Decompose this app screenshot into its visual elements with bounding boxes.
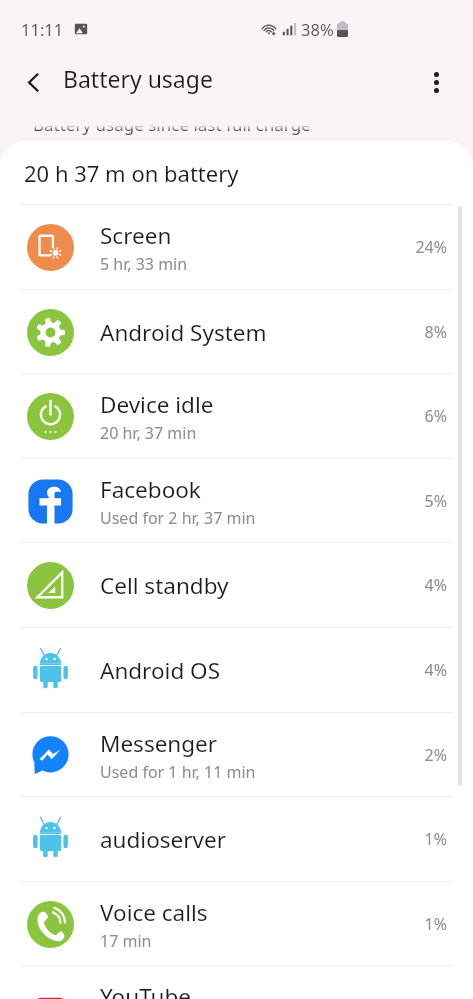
staticText: Cell standby bbox=[100, 570, 229, 601]
staticText: 5 hr, 33 min bbox=[100, 253, 188, 275]
button[interactable]: audioserver bbox=[0, 797, 473, 881]
staticText: 4% bbox=[413, 574, 447, 596]
staticText: Android OS bbox=[100, 655, 220, 686]
button[interactable]: Voice calls bbox=[0, 882, 473, 966]
staticText: audioserver bbox=[100, 824, 226, 855]
staticText: 1% bbox=[413, 828, 447, 850]
button[interactable]: Facebook bbox=[0, 459, 473, 543]
staticText: 20 h 37 m on battery bbox=[24, 158, 239, 188]
staticText: 4% bbox=[413, 659, 447, 681]
button[interactable]: Android OS bbox=[0, 628, 473, 712]
staticText: Used for 1 hr, 11 min bbox=[100, 761, 256, 783]
button[interactable]: YouTube bbox=[0, 966, 473, 999]
staticText: Screen bbox=[100, 220, 172, 251]
button[interactable]: Back bbox=[17, 66, 49, 98]
staticText: 1% bbox=[413, 913, 447, 935]
staticText: 5% bbox=[413, 490, 447, 512]
staticText: Voice calls bbox=[100, 897, 208, 928]
staticText: Used for 2 hr, 37 min bbox=[100, 507, 256, 529]
staticText: 24% bbox=[413, 236, 447, 258]
staticText: 2% bbox=[413, 744, 447, 766]
staticText: 20 hr, 37 min bbox=[100, 422, 197, 444]
staticText: Messenger bbox=[100, 728, 218, 759]
staticText: 6% bbox=[413, 405, 447, 427]
staticText: Battery usage since last full charge bbox=[33, 113, 311, 136]
staticText: 17 min bbox=[100, 930, 152, 952]
staticText: YouTube bbox=[100, 981, 191, 999]
staticText: Facebook bbox=[100, 474, 201, 505]
button[interactable]: Device idle bbox=[0, 374, 473, 458]
button[interactable]: Cell standby bbox=[0, 543, 473, 627]
staticText: 11:11 bbox=[21, 18, 64, 40]
staticText: 8% bbox=[413, 321, 447, 343]
staticText: Device idle bbox=[100, 389, 214, 420]
staticText: 38% bbox=[301, 18, 334, 40]
staticText: Android System bbox=[100, 317, 267, 348]
button[interactable]: Android System bbox=[0, 290, 473, 374]
button[interactable]: Screen bbox=[0, 205, 473, 289]
button[interactable]: Messenger bbox=[0, 713, 473, 797]
button[interactable]: More options bbox=[421, 67, 451, 97]
staticText: Battery usage bbox=[63, 63, 213, 94]
